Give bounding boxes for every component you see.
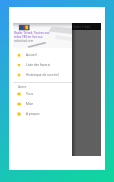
staticText: Autre bbox=[18, 85, 27, 89]
staticText: Accueil bbox=[26, 53, 37, 57]
staticText: Tous bbox=[26, 92, 33, 96]
staticText: Historique de courriel bbox=[26, 73, 59, 77]
staticText: Mise bbox=[26, 102, 34, 106]
button[interactable]: Liste des favoris bbox=[13, 60, 72, 70]
button[interactable]: Tous bbox=[13, 89, 72, 99]
button[interactable]: Historique de courriel bbox=[13, 70, 72, 80]
button[interactable]: A propos bbox=[13, 109, 72, 119]
staticText: infos FM en live sur bbox=[14, 35, 43, 39]
staticText: radiotchad.com bbox=[14, 39, 34, 43]
button[interactable]: Radio Tchad: Toutes vos bbox=[13, 23, 72, 48]
other: App bar bbox=[72, 23, 101, 30]
staticText: Radio Tchad bbox=[73, 25, 91, 29]
staticText: A propos bbox=[26, 112, 40, 116]
staticText: Radio Tchad: Toutes vos bbox=[14, 31, 50, 35]
button[interactable]: Accueil bbox=[13, 50, 72, 60]
staticText: Liste des favoris bbox=[26, 63, 51, 67]
button[interactable]: Mise bbox=[13, 99, 72, 109]
